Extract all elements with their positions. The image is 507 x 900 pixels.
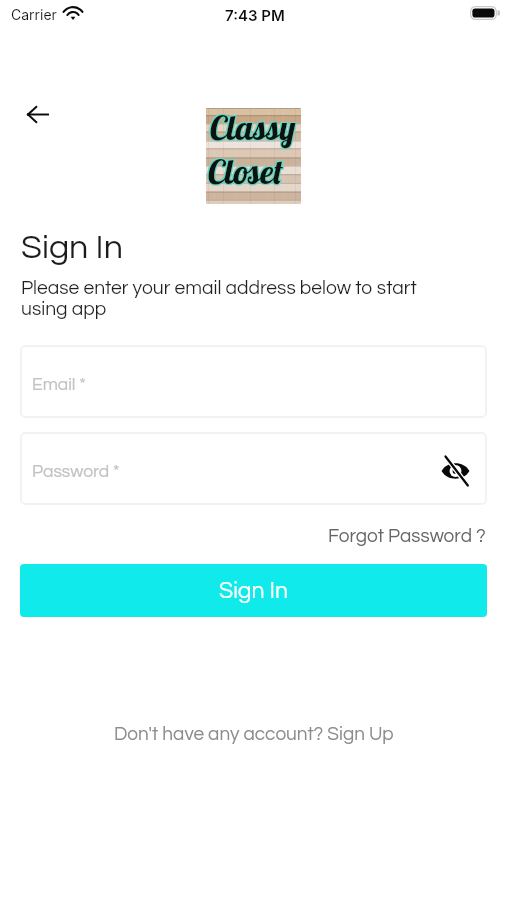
button[interactable]: Toggle password visibility	[438, 454, 472, 488]
staticText: Closet	[207, 150, 283, 193]
staticText: Carrier	[11, 6, 57, 23]
staticText: Password *	[32, 463, 120, 481]
staticText: Classy	[208, 108, 295, 148]
button[interactable]: Password *	[20, 432, 487, 505]
staticText: Closet	[206, 149, 282, 192]
staticText: Forgot Password ?	[328, 526, 486, 546]
staticText: Sign In	[21, 230, 123, 265]
button[interactable]: Don't have any account? Sign Up	[114, 724, 394, 744]
staticText: Email *	[32, 376, 86, 394]
staticText: Please enter your email address below to…	[21, 278, 421, 319]
button[interactable]: Email *	[20, 345, 487, 418]
staticText: Closet	[207, 150, 283, 193]
staticText: Don't have any account? Sign Up	[114, 724, 394, 744]
staticText: 7:43 PM	[225, 6, 285, 24]
button[interactable]: Forgot Password ?	[328, 526, 486, 546]
button[interactable]: Sign In	[20, 564, 487, 617]
staticText: Classy	[209, 108, 296, 149]
button[interactable]: Back	[19, 96, 55, 132]
staticText: Classy	[209, 108, 296, 149]
staticText: Sign In	[219, 579, 288, 603]
